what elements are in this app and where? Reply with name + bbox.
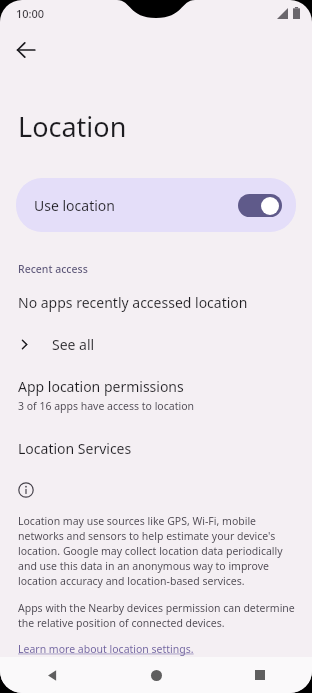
button[interactable]: App location permissions xyxy=(0,376,312,415)
button[interactable]: Back xyxy=(0,657,104,693)
button[interactable]: Back xyxy=(6,30,46,70)
button[interactable]: Learn more about location settings. xyxy=(18,642,194,656)
button[interactable]: Home xyxy=(104,657,208,693)
staticText: App location permissions xyxy=(18,377,184,396)
staticText: Apps with the Nearby devices permission … xyxy=(18,601,298,630)
button[interactable]: See all xyxy=(0,329,312,359)
staticText: See all xyxy=(52,335,95,354)
staticText: 3 of 16 apps have access to location xyxy=(18,399,194,413)
staticText: Learn more about location settings. xyxy=(18,642,194,656)
staticText: Location may use sources like GPS, Wi-Fi… xyxy=(18,514,298,588)
staticText: Recent access xyxy=(18,262,88,276)
staticText: 10:00 xyxy=(16,6,45,21)
button[interactable]: Use location xyxy=(16,178,296,232)
other: Information xyxy=(18,482,34,498)
button[interactable]: Recent apps xyxy=(208,657,312,693)
staticText: Location xyxy=(18,108,127,145)
staticText: No apps recently accessed location xyxy=(18,293,248,312)
button[interactable]: Location Services xyxy=(0,437,312,460)
staticText: Location Services xyxy=(18,439,132,458)
staticText: Use location xyxy=(34,196,238,215)
